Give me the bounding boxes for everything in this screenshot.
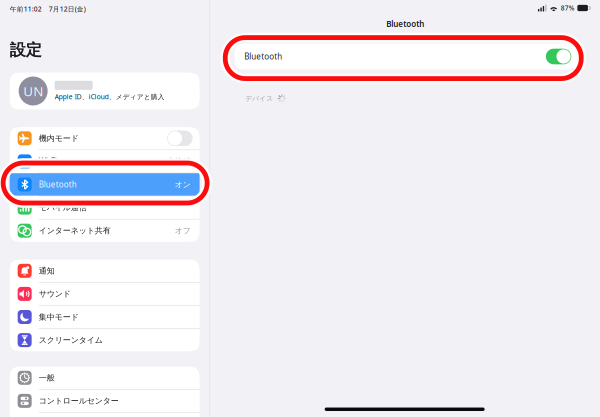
staticText: オン [175, 180, 191, 189]
staticText: 通知 [39, 266, 55, 276]
staticText: コントロールセンター [39, 396, 119, 406]
button[interactable]: 機内モード [10, 127, 200, 150]
button[interactable]: 一般 [10, 366, 200, 389]
staticText: インターネット共有 [39, 226, 111, 236]
staticText: Bluetooth [39, 179, 77, 190]
staticText: Apple ID、iCloud、メディアと購入 [55, 92, 165, 101]
staticText: モバイル通信 [39, 203, 87, 212]
button[interactable]: サウンド [10, 283, 200, 305]
staticText: Wi-Fi [39, 156, 57, 167]
button[interactable]: インターネット共有 [10, 219, 200, 242]
button[interactable]: 通知 [10, 259, 200, 282]
staticText: 午前11:02 7月12日(金) [10, 5, 86, 13]
staticText: Bluetooth [244, 51, 282, 62]
button[interactable]: Bluetooth [10, 173, 200, 196]
staticText: 未接続 [167, 156, 191, 166]
staticText: サウンド [39, 289, 71, 299]
button[interactable]: コントロールセンター [10, 390, 200, 412]
button[interactable]: モバイル通信 [10, 196, 200, 219]
button[interactable]: Wi-Fi [10, 150, 200, 173]
staticText: Bluetooth [386, 19, 424, 29]
staticText: 設定 [10, 40, 42, 60]
button[interactable]: スクリーンタイム [10, 329, 200, 351]
staticText: スクリーンタイム [39, 335, 103, 345]
button[interactable]: Bluetooth [234, 43, 579, 69]
staticText: オフ [175, 226, 191, 236]
staticText: 集中モード [39, 312, 79, 322]
button[interactable]: UN [10, 72, 200, 109]
staticText: 一般 [39, 373, 55, 383]
staticText: 87% [561, 4, 575, 12]
staticText: デバイス [245, 94, 273, 103]
staticText: 機内モード [39, 133, 79, 143]
button[interactable]: 集中モード [10, 306, 200, 328]
staticText: UN [23, 82, 43, 100]
